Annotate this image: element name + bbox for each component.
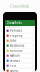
- staticText: Jobs: [10, 39, 16, 42]
- button[interactable]: Vehicles: [5, 28, 35, 33]
- staticText: Pets: [10, 64, 16, 67]
- staticText: Property: [10, 34, 22, 37]
- button[interactable]: Property: [5, 33, 35, 38]
- button[interactable]: Furniture: [5, 48, 35, 53]
- button[interactable]: Sports: [5, 68, 35, 72]
- staticText: Sports: [10, 69, 18, 72]
- staticText: Classifieds: [6, 21, 21, 25]
- staticText: Services: [10, 59, 20, 62]
- staticText: Vehicles: [10, 29, 22, 32]
- button[interactable]: Services: [5, 58, 35, 63]
- button[interactable]: Jobs: [5, 38, 35, 43]
- staticText: Classifieds: [10, 3, 29, 9]
- button[interactable]: Fashion: [5, 53, 35, 58]
- button[interactable]: Electronics: [5, 43, 35, 48]
- button[interactable]: Pets: [5, 63, 35, 68]
- staticText: Electronics: [10, 44, 24, 47]
- staticText: Categories: [6, 25, 21, 28]
- staticText: Furniture: [10, 49, 23, 52]
- staticText: Fashion: [10, 54, 20, 57]
